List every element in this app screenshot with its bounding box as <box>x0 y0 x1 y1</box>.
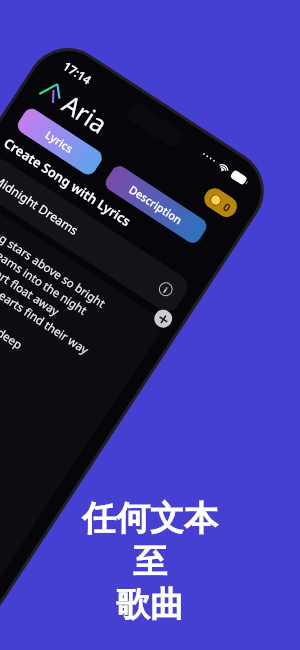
staticText: Carry dreams into the night <box>0 224 91 319</box>
staticText: 至 <box>133 540 167 583</box>
staticText: In the darkness deep <box>0 277 25 353</box>
staticText: Description <box>126 182 186 228</box>
staticText: 歌曲 <box>116 583 184 626</box>
button[interactable]: Lyrics <box>14 105 105 178</box>
button[interactable]: Info <box>156 280 175 299</box>
staticText: Aria <box>56 86 114 141</box>
staticText: Let my heart float away <box>0 237 62 320</box>
staticText: Glowing stars above so bright <box>0 210 108 312</box>
staticText: Lyrics <box>43 127 77 156</box>
button[interactable]: Add <box>151 306 176 331</box>
button[interactable]: Midnight Dreams <box>0 154 193 316</box>
staticText: 0 <box>220 199 234 215</box>
staticText: Create Song with Lyrics <box>1 134 135 230</box>
button[interactable]: Description <box>102 163 210 246</box>
staticText: Where lost hearts find their way <box>0 250 92 358</box>
staticText: 任何文本 <box>82 497 218 540</box>
staticText: Midnight Dreams <box>0 171 82 238</box>
button[interactable]: 0 <box>200 184 241 221</box>
button[interactable]: Glowing stars above so bright <box>0 193 167 636</box>
staticText: i <box>162 284 170 295</box>
staticText: 17:14 <box>61 57 95 86</box>
